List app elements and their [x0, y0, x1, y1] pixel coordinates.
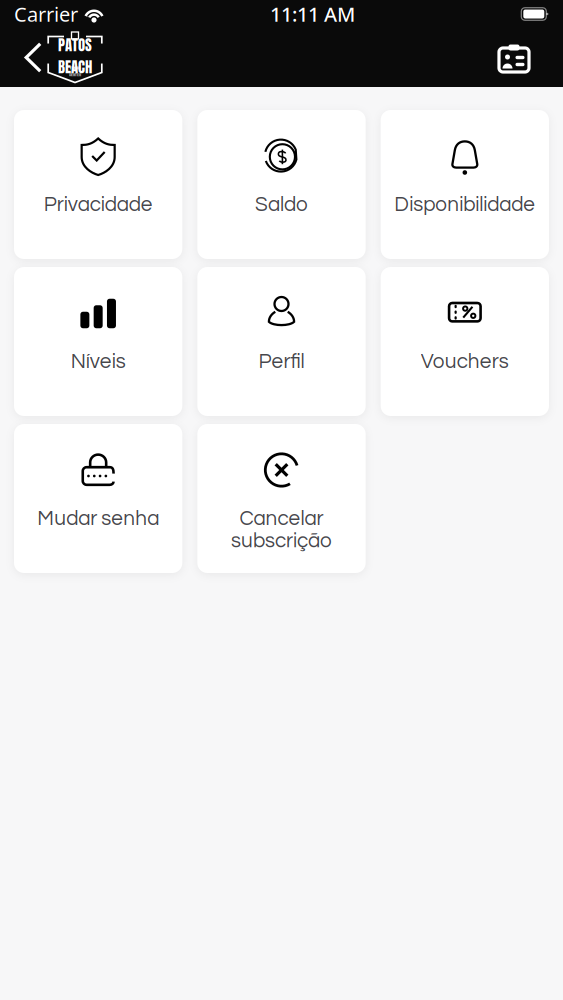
- staticText: Saldo: [255, 194, 308, 215]
- button[interactable]: Vouchers: [381, 267, 549, 416]
- button[interactable]: Saldo: [197, 110, 366, 259]
- button[interactable]: Perfil: [197, 267, 366, 416]
- button[interactable]: Back: [0, 28, 113, 87]
- button[interactable]: Cancelar: [197, 424, 366, 573]
- staticText: Perfil: [258, 351, 304, 372]
- staticText: Disponibilidade: [394, 194, 535, 215]
- staticText: Vouchers: [421, 351, 509, 372]
- staticText: TENNIS: [69, 64, 80, 71]
- staticText: 11:11 AM: [270, 1, 355, 27]
- staticText: PATOS: [58, 34, 92, 56]
- staticText: Níveis: [71, 351, 126, 372]
- button[interactable]: Mudar senha: [14, 424, 182, 573]
- staticText: CENTER: [69, 71, 81, 78]
- staticText: subscrição: [231, 530, 332, 552]
- staticText: Carrier: [14, 1, 78, 27]
- button[interactable]: Privacidade: [14, 110, 182, 259]
- staticText: Privacidade: [44, 194, 153, 215]
- staticText: Cancelar: [239, 508, 323, 529]
- staticText: Mudar senha: [37, 508, 159, 529]
- button[interactable]: Disponibilidade: [381, 110, 549, 259]
- button[interactable]: Níveis: [14, 267, 182, 416]
- button[interactable]: Membership card: [480, 28, 548, 87]
- staticText: BEACH: [58, 56, 92, 78]
